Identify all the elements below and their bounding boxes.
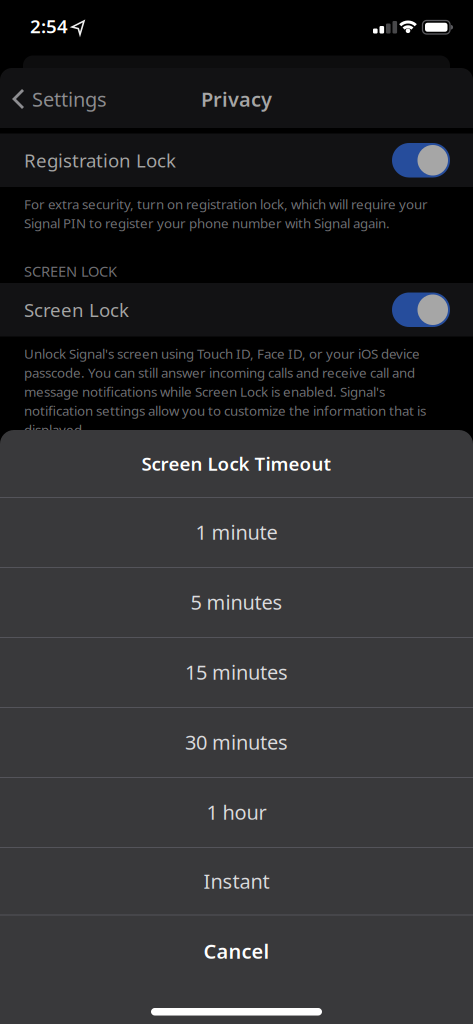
staticText: 2:54 (30, 14, 68, 38)
staticText: displayed. (24, 421, 86, 438)
staticText: 5 minutes (190, 589, 282, 615)
button[interactable]: 5 minutes (0, 567, 473, 636)
button[interactable]: 15 minutes (0, 637, 473, 706)
button[interactable]: Registration Lock (392, 143, 450, 177)
staticText: Screen Lock (24, 297, 129, 322)
staticText: 30 minutes (185, 729, 288, 755)
staticText: message notifications while Screen Lock … (24, 383, 385, 400)
staticText: notification settings allow you to custo… (24, 402, 426, 419)
button[interactable]: Settings (12, 79, 107, 119)
button[interactable]: Screen Lock (392, 292, 450, 327)
staticText: Registration Lock (24, 148, 176, 173)
button[interactable]: 1 minute (0, 497, 473, 566)
staticText: For extra security, turn on registration… (24, 195, 428, 213)
button[interactable]: Cancel (0, 916, 473, 986)
button[interactable]: Instant (0, 846, 473, 915)
staticText: Signal PIN to register your phone number… (24, 214, 390, 232)
staticText: 1 minute (195, 519, 277, 545)
staticText: 1 hour (206, 799, 266, 825)
staticText: Screen Lock Timeout (141, 451, 331, 476)
staticText: Cancel (203, 938, 269, 964)
staticText: Settings (32, 86, 107, 112)
staticText: Unlock Signal's screen using Touch ID, F… (24, 345, 420, 362)
staticText: Instant (203, 868, 269, 894)
button[interactable]: 1 hour (0, 777, 473, 846)
staticText: passcode. You can still answer incoming … (24, 364, 415, 381)
staticText: 15 minutes (185, 659, 288, 685)
button[interactable]: 30 minutes (0, 707, 473, 776)
staticText: Privacy (201, 86, 272, 112)
staticText: SCREEN LOCK (24, 261, 117, 281)
